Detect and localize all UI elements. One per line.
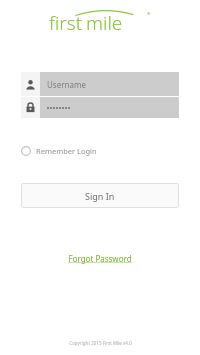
- button[interactable]: Username: [21, 72, 179, 96]
- staticText: Copyright 2015 First Mile v4.0: [69, 340, 132, 346]
- staticText: first: [49, 10, 83, 36]
- staticText: Remember Login: [36, 146, 97, 156]
- staticText: Username: [47, 79, 86, 90]
- staticText: mile: [86, 10, 123, 36]
- staticText: Sign In: [85, 190, 115, 202]
- button[interactable]: Sign In: [21, 183, 179, 208]
- button[interactable]: [21, 97, 179, 118]
- staticText: ®: [147, 11, 151, 16]
- button[interactable]: Forgot Password: [62, 250, 138, 267]
- staticText: Forgot Password: [68, 253, 132, 264]
- button[interactable]: Remember Login: [20, 143, 98, 159]
- other: First Mile logo: [49, 6, 151, 36]
